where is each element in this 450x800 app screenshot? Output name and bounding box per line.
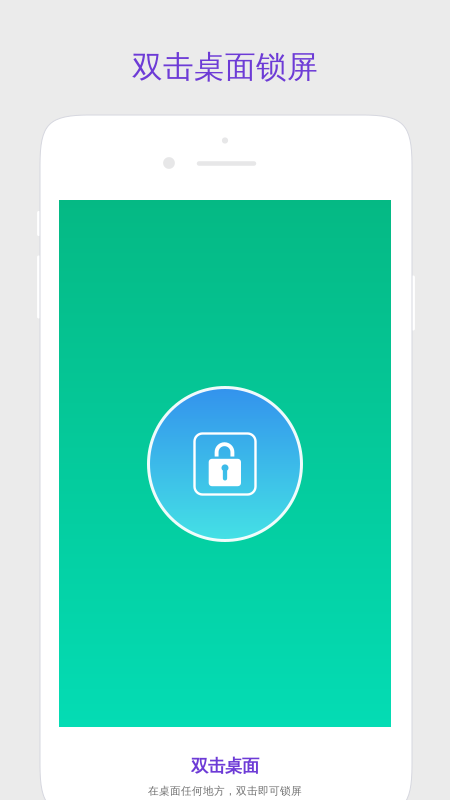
staticText: 在桌面任何地方，双击即可锁屏 (148, 784, 302, 797)
staticText: 双击桌面 (191, 755, 259, 777)
staticText: 双击桌面锁屏 (132, 48, 318, 86)
